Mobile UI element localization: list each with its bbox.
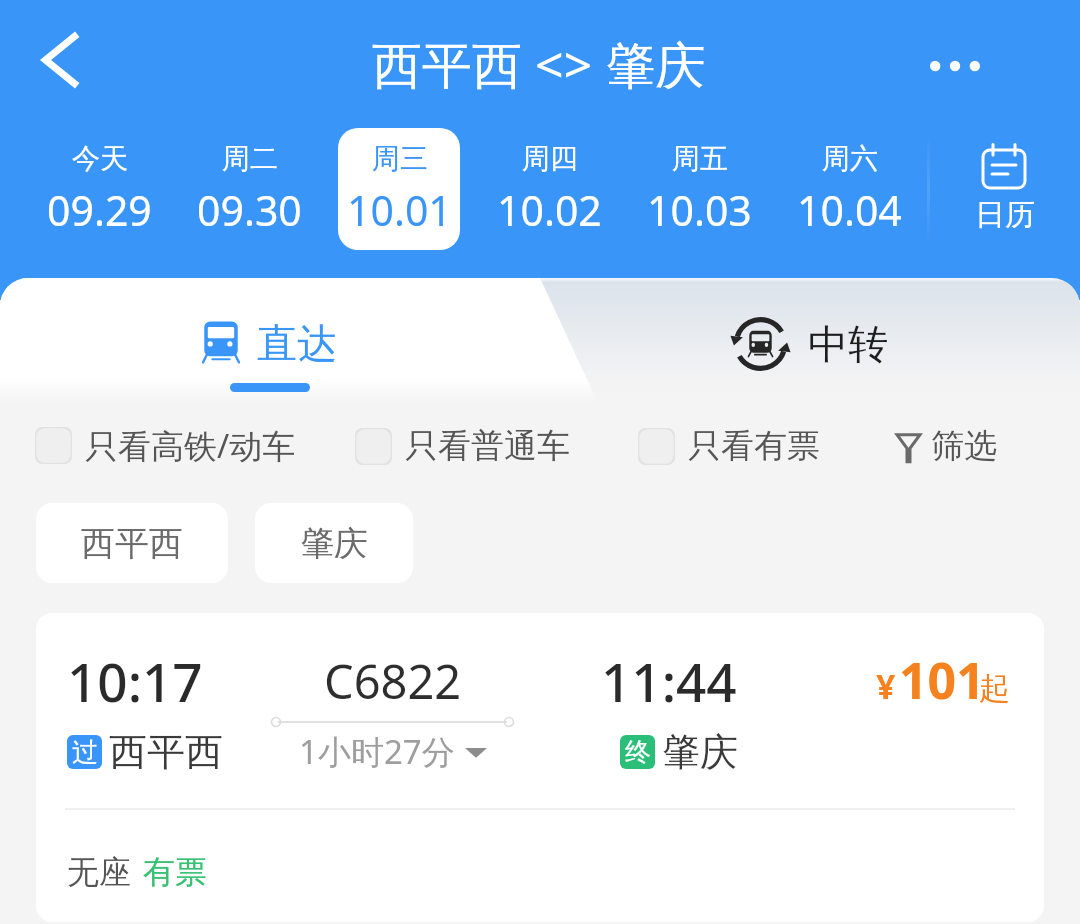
staticText: 直达 [257,318,337,368]
button[interactable]: 中转 [695,308,924,380]
button[interactable]: 周四 [488,128,610,250]
staticText: 有票 [143,852,207,892]
staticText: 西平西 <> 肇庆 [372,30,706,98]
staticText: 日历 [975,196,1035,234]
staticText: 周六 [822,141,878,176]
staticText: 10.02 [497,182,602,238]
button[interactable]: 周三 [338,128,460,250]
button[interactable]: 日历 [930,111,1080,266]
button[interactable]: 肇庆 [255,503,413,583]
staticText: 起 [979,669,1010,708]
staticText: C6822 [324,649,462,713]
button[interactable]: Back [20,20,100,100]
staticText: ¥ [876,663,896,709]
button[interactable]: 只看有票 [625,415,833,477]
staticText: 筛选 [931,425,997,467]
staticText: 10.01 [347,182,452,238]
staticText: 只看有票 [688,425,820,467]
staticText: 11:44 [601,645,737,717]
staticText: 西平西 [81,522,183,565]
staticText: 09.29 [47,182,152,238]
staticText: 10.04 [797,182,902,238]
button[interactable]: 10:17 [36,613,1044,922]
button[interactable]: 筛选 [884,415,1009,477]
staticText: 终 [625,736,651,769]
staticText: 10:17 [67,645,203,717]
button[interactable]: 直达 [163,307,373,378]
staticText: 过 [72,736,98,769]
button[interactable]: 西平西 [36,503,228,583]
button[interactable]: 周六 [788,128,910,250]
staticText: 周四 [522,141,578,176]
staticText: 101 [899,646,985,710]
staticText: 只看高铁/动车 [85,423,296,468]
staticText: 09.30 [197,182,302,238]
button[interactable]: 周二 [188,128,310,250]
staticText: 周二 [222,141,278,176]
button[interactable]: 只看普通车 [342,415,583,477]
staticText: 1小时27分 [299,729,455,774]
staticText: 只看普通车 [405,425,570,467]
staticText: 周五 [672,141,728,176]
button[interactable]: More options [907,18,1003,114]
staticText: 周三 [372,141,428,176]
button[interactable]: 周五 [638,128,760,250]
button[interactable]: 今天 [38,128,160,250]
staticText: 西平西 [109,728,223,776]
staticText: 肇庆 [300,522,368,565]
staticText: 无座 [67,852,131,892]
button[interactable]: 只看高铁/动车 [22,413,309,478]
staticText: 10.03 [647,182,752,238]
staticText: 中转 [808,319,888,369]
staticText: 今天 [72,141,128,176]
staticText: 肇庆 [662,728,738,776]
